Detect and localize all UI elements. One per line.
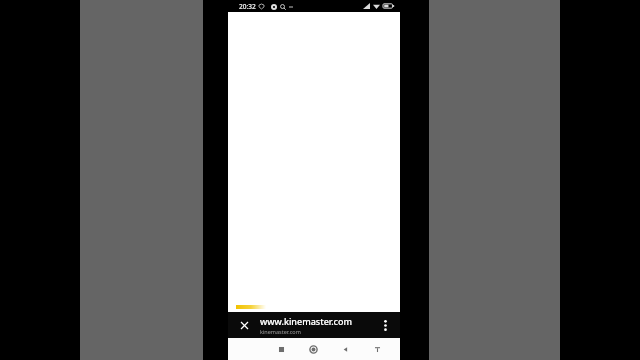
button[interactable]: More options [376,316,394,334]
button[interactable]: Close [228,312,400,338]
staticText: www.kinemaster.com [260,315,353,327]
staticText: kinemaster.com [260,328,301,335]
button[interactable]: Hide keyboard [368,340,386,358]
button[interactable]: Close [236,317,252,333]
button[interactable]: Recent apps [272,340,290,358]
staticText: 20:32 [239,2,256,11]
button[interactable]: Back [336,340,354,358]
button[interactable]: Home [304,340,322,358]
